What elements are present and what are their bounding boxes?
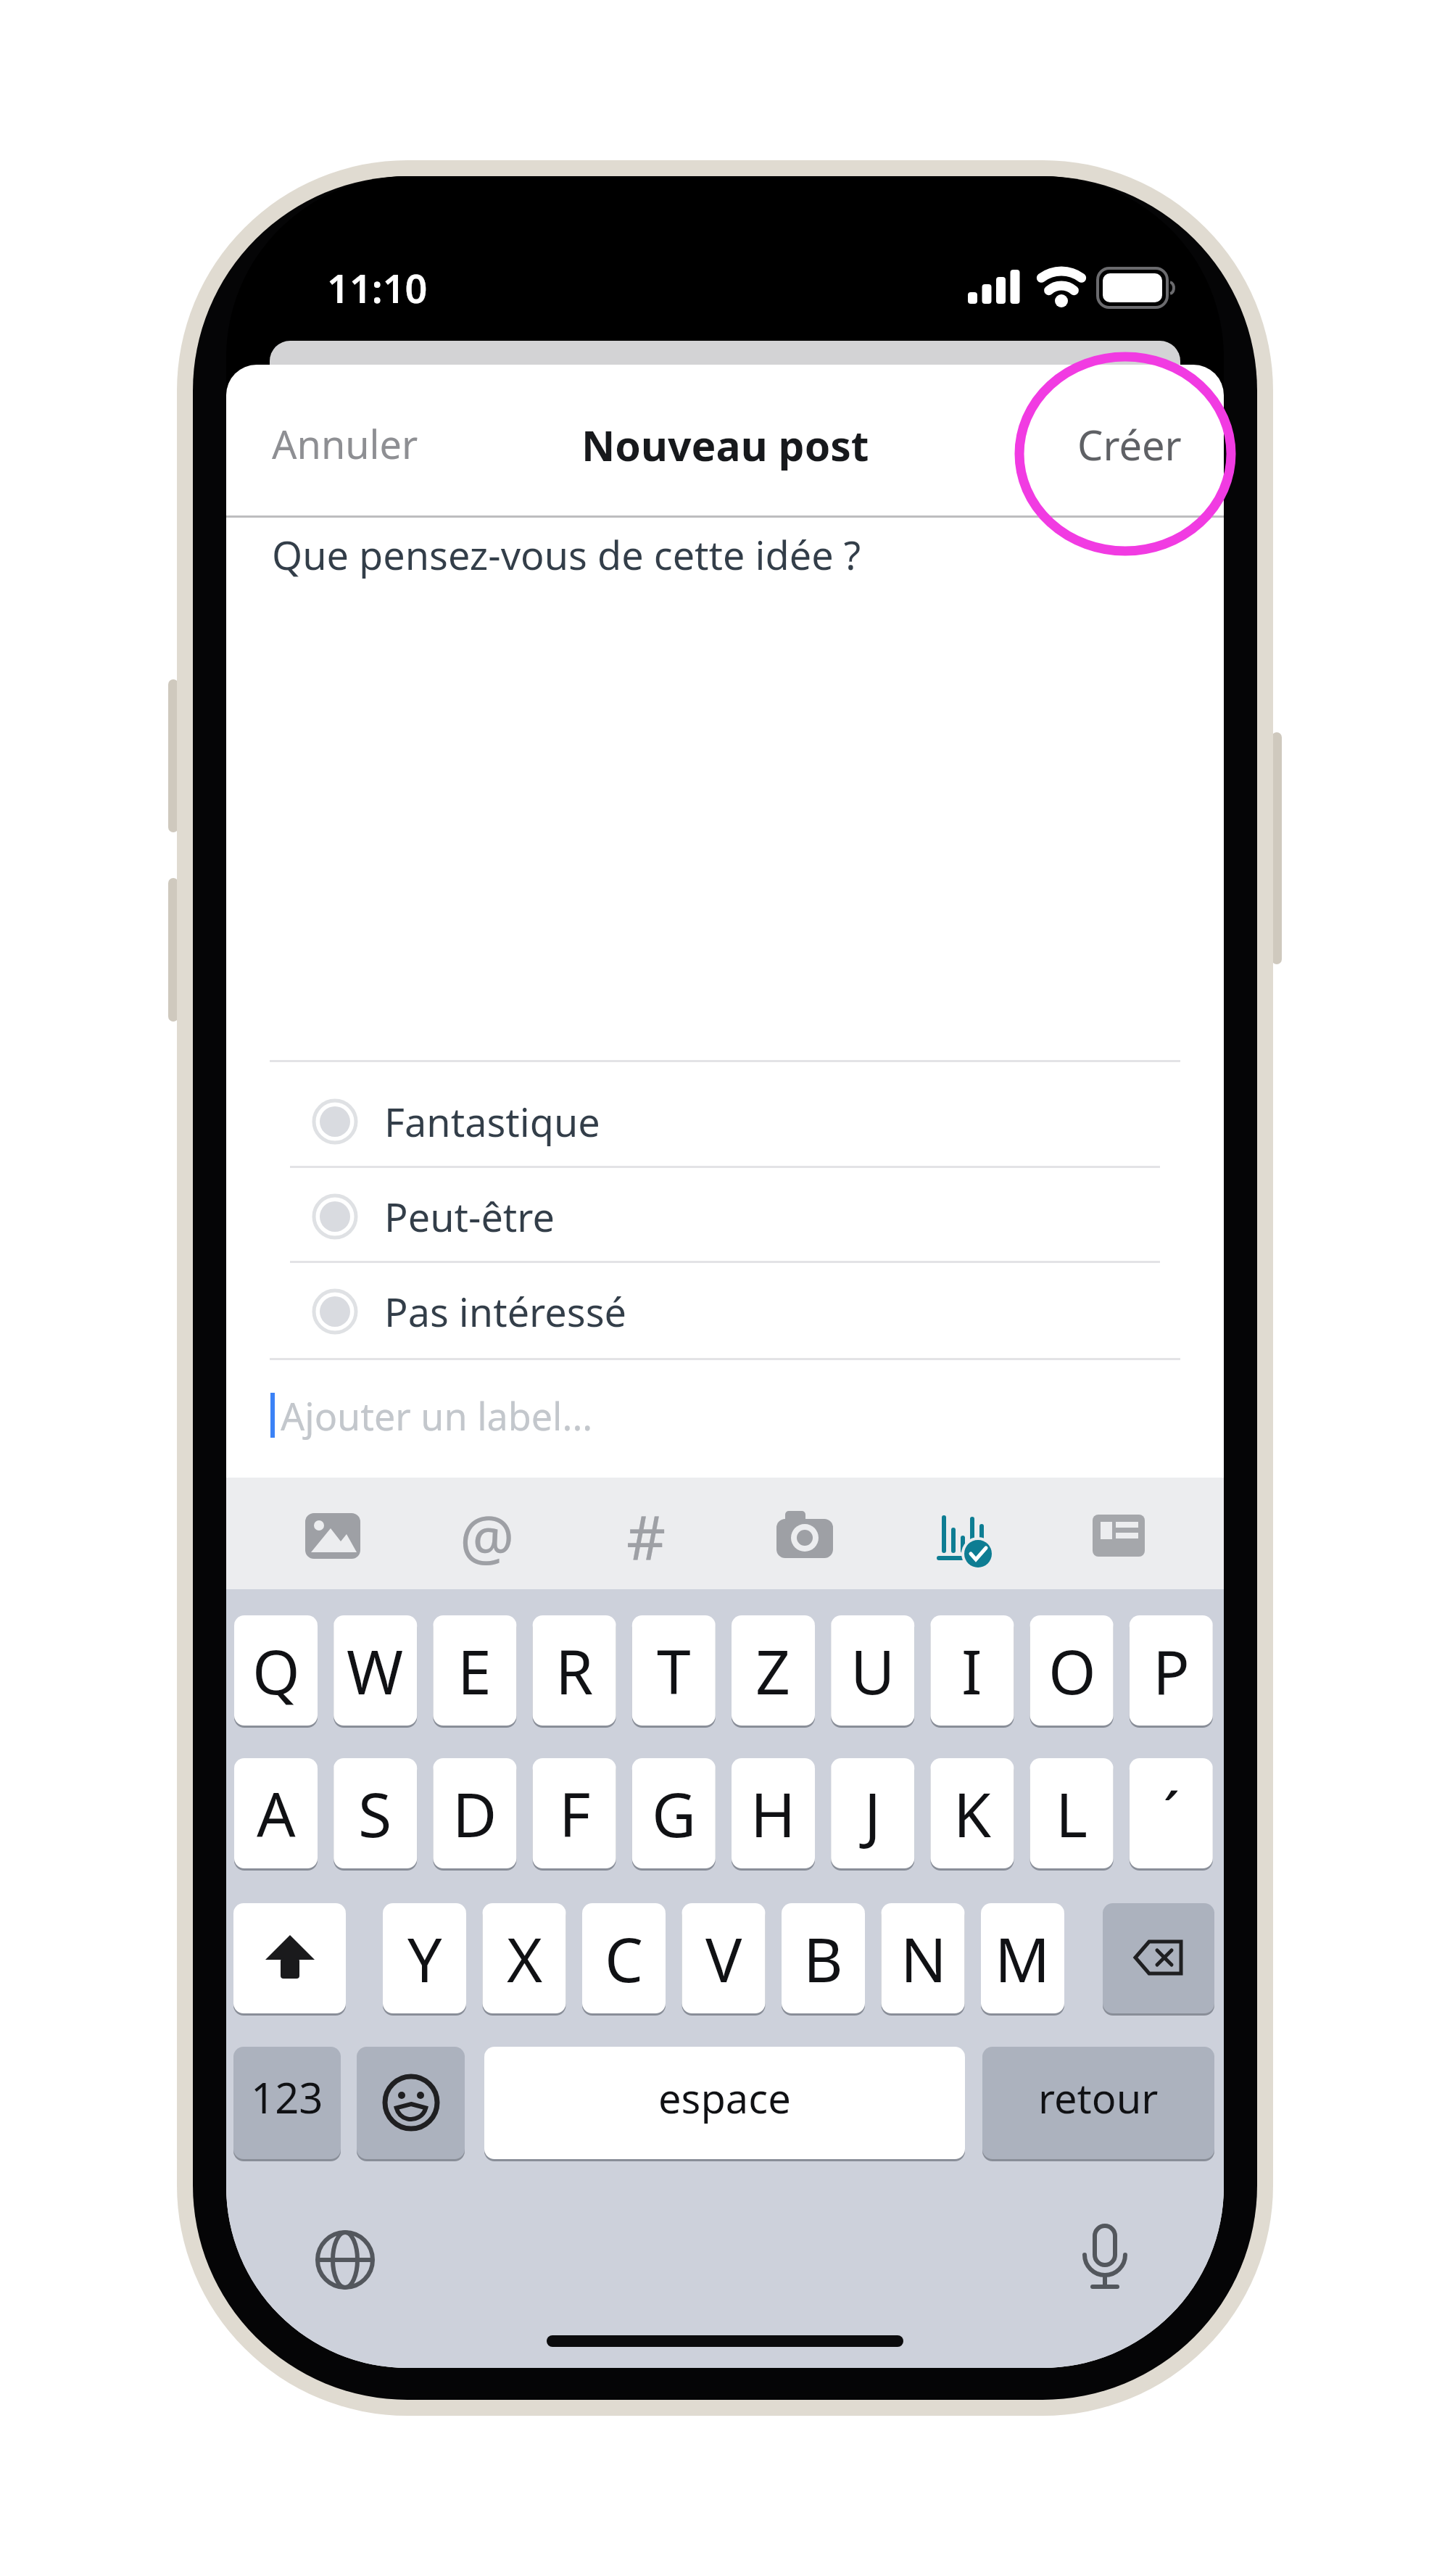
staticText: Y <box>407 1917 442 2000</box>
button[interactable]: S <box>333 1758 417 1868</box>
button[interactable]: F <box>533 1758 616 1868</box>
staticText: B <box>803 1917 843 2000</box>
button[interactable]: J <box>831 1758 914 1868</box>
button[interactable]: B <box>782 1903 865 2013</box>
button[interactable]: Créer <box>964 417 1182 471</box>
button[interactable]: G <box>632 1758 716 1868</box>
button[interactable]: P <box>1130 1615 1213 1726</box>
staticText: C <box>605 1917 644 2000</box>
button[interactable] <box>357 2047 465 2159</box>
button[interactable]: Fantastique <box>384 1095 600 1148</box>
button[interactable]: Q <box>234 1615 318 1726</box>
staticText: Fantastique <box>384 1095 600 1148</box>
button[interactable] <box>233 1903 346 2013</box>
staticText: X <box>507 1917 543 2000</box>
staticText: espace <box>658 2070 791 2125</box>
staticText: Pas intéressé <box>384 1285 626 1338</box>
staticText: R <box>555 1629 594 1712</box>
staticText: Q <box>252 1629 300 1712</box>
button[interactable]: Peut-être <box>384 1190 555 1243</box>
button[interactable]: Pas intéressé <box>384 1285 626 1338</box>
staticText: retour <box>1038 2070 1159 2125</box>
button[interactable]: H <box>732 1758 815 1868</box>
staticText: F <box>559 1772 591 1855</box>
button[interactable]: retour <box>982 2041 1214 2153</box>
staticText: V <box>705 1917 742 2000</box>
button[interactable]: L <box>1030 1758 1114 1868</box>
staticText: U <box>850 1629 895 1712</box>
staticText: S <box>358 1772 392 1855</box>
staticText: I <box>961 1629 982 1712</box>
staticText: 11:10 <box>327 261 428 315</box>
button[interactable]: I <box>930 1615 1014 1726</box>
staticText: # <box>626 1495 666 1575</box>
button[interactable]: W <box>333 1615 417 1726</box>
button[interactable]: espace <box>484 2041 965 2153</box>
staticText: E <box>457 1629 492 1712</box>
staticText: H <box>750 1772 796 1855</box>
button[interactable]: V <box>682 1903 766 2013</box>
staticText: Annuler <box>272 417 418 471</box>
button[interactable] <box>1078 1495 1165 1575</box>
staticText: G <box>652 1772 697 1855</box>
button[interactable]: ´ <box>1130 1758 1213 1868</box>
staticText: Z <box>755 1629 791 1712</box>
button[interactable]: Z <box>732 1615 815 1726</box>
button[interactable]: R <box>533 1615 616 1726</box>
staticText: Nouveau post <box>581 417 869 471</box>
staticText: Peut-être <box>384 1190 555 1243</box>
button[interactable]: A <box>234 1758 318 1868</box>
button[interactable]: 123 <box>233 2041 341 2153</box>
button[interactable] <box>290 1495 377 1575</box>
button[interactable]: O <box>1030 1615 1114 1726</box>
staticText: O <box>1048 1629 1096 1712</box>
staticText: J <box>864 1772 881 1855</box>
staticText: Ajouter un label... <box>281 1390 593 1441</box>
button[interactable]: C <box>582 1903 666 2013</box>
button[interactable]: U <box>831 1615 914 1726</box>
button[interactable]: # <box>602 1495 689 1575</box>
button[interactable]: N <box>882 1903 965 2013</box>
button[interactable] <box>761 1495 848 1575</box>
staticText: Créer <box>1077 417 1182 471</box>
button[interactable]: D <box>433 1758 516 1868</box>
button[interactable]: M <box>981 1903 1064 2013</box>
staticText: ´ <box>1163 1772 1180 1855</box>
staticText: N <box>900 1917 947 2000</box>
button[interactable]: @ <box>444 1495 531 1575</box>
button[interactable]: K <box>930 1758 1014 1868</box>
button[interactable] <box>921 1495 1008 1575</box>
button[interactable] <box>1103 1903 1214 2013</box>
button[interactable]: X <box>483 1903 566 2013</box>
button[interactable] <box>1064 2219 1145 2300</box>
staticText: T <box>657 1629 691 1712</box>
button[interactable]: Y <box>383 1903 466 2013</box>
staticText: L <box>1056 1772 1088 1855</box>
button[interactable] <box>304 2219 386 2300</box>
button[interactable]: E <box>433 1615 516 1726</box>
staticText: Que pensez-vous de cette idée ? <box>272 528 861 579</box>
staticText: 123 <box>251 2068 323 2126</box>
staticText: P <box>1153 1629 1190 1712</box>
button[interactable]: T <box>632 1615 716 1726</box>
button[interactable]: Annuler <box>272 417 418 471</box>
staticText: D <box>452 1772 497 1855</box>
staticText: A <box>257 1772 296 1855</box>
staticText: K <box>953 1772 991 1855</box>
staticText: W <box>347 1629 404 1712</box>
staticText: @ <box>460 1495 515 1575</box>
staticText: M <box>995 1917 1051 2000</box>
